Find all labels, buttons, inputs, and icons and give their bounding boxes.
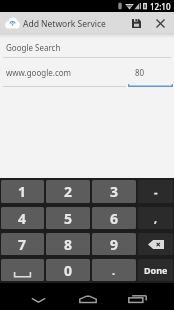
button[interactable]: - — [138, 180, 173, 203]
staticText: 80 — [135, 67, 145, 78]
button[interactable]: 1 — [1, 180, 44, 203]
staticText: 1 — [18, 182, 27, 201]
button[interactable]: 8 — [46, 233, 90, 255]
staticText: www.google.com — [6, 67, 72, 78]
other: Space — [14, 262, 31, 278]
button[interactable]: Back — [21, 283, 55, 310]
staticText: Google Search — [6, 42, 61, 53]
button[interactable]: Recents — [120, 283, 154, 310]
button[interactable]: App icon — [3, 14, 21, 32]
staticText: . — [112, 263, 116, 278]
button[interactable]: Close — [151, 14, 169, 32]
button[interactable]: 3 — [92, 180, 136, 203]
staticText: 3 — [110, 182, 119, 201]
staticText: 8 — [64, 235, 73, 254]
button[interactable]: 9 — [92, 233, 136, 255]
staticText: 7 — [18, 235, 27, 254]
staticText: 9 — [110, 235, 119, 254]
button[interactable]: 0 — [46, 259, 90, 281]
staticText: 6 — [110, 209, 119, 228]
staticText: 4 — [18, 209, 27, 228]
staticText: , — [154, 211, 158, 226]
button[interactable]: 5 — [46, 207, 90, 229]
button[interactable]: Home — [71, 283, 105, 310]
button[interactable]: Backspace — [138, 233, 173, 255]
staticText: 2 — [64, 182, 73, 201]
button[interactable]: 6 — [92, 207, 136, 229]
staticText: 0 — [64, 261, 73, 280]
button[interactable]: , — [138, 207, 173, 229]
button[interactable]: Google Search — [0, 41, 174, 54]
staticText: 5 — [64, 209, 73, 228]
staticText: 12:10 — [150, 1, 171, 12]
button[interactable]: 4 — [1, 207, 44, 229]
other: Backspace — [148, 240, 164, 249]
staticText: Done — [144, 264, 168, 276]
button[interactable]: . — [92, 259, 136, 281]
button[interactable]: 7 — [1, 233, 44, 255]
staticText: Add Network Service — [23, 18, 106, 30]
staticText: - — [154, 184, 158, 199]
button[interactable]: 80 — [129, 66, 174, 79]
button[interactable]: 2 — [46, 180, 90, 203]
button[interactable]: www.google.com — [0, 66, 129, 79]
button[interactable]: Save — [127, 14, 145, 32]
button[interactable]: Done — [138, 259, 173, 281]
button[interactable]: Space — [1, 259, 44, 281]
